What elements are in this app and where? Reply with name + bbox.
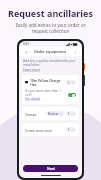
button[interactable]: Clamps [22, 107, 79, 120]
staticText: Medium [48, 112, 59, 116]
staticText: Add any supplies needed with your instal… [23, 59, 78, 67]
staticText: 9:41 [23, 42, 29, 46]
button[interactable]: Quantity stepper [66, 127, 76, 132]
button[interactable]: Quantity stepper [66, 111, 76, 116]
staticText: 1 [68, 128, 70, 132]
button[interactable]: Next [23, 165, 78, 172]
button[interactable]: More options [72, 49, 78, 55]
staticText: 10m Yellow Charge Flex [30, 78, 66, 86]
staticText: Do you need more than 1 unit? [25, 89, 66, 97]
button[interactable]: Medium [46, 111, 64, 116]
staticText: 1 [68, 81, 70, 85]
button[interactable]: 10m Yellow Charge Flex [22, 75, 79, 104]
staticText: Easily add extras to your order or reque… [14, 22, 87, 34]
staticText: Clamps [25, 112, 46, 116]
staticText: Next [47, 166, 55, 171]
button[interactable]: Toggle more than one unit [68, 93, 76, 97]
staticText: Crown reset tools [25, 128, 66, 132]
staticText: 1 [68, 112, 70, 116]
staticText: See details [25, 97, 41, 101]
button[interactable]: Learn more [23, 68, 41, 72]
staticText: Order equipment [34, 49, 67, 54]
button[interactable]: Crown reset tools [22, 123, 79, 136]
staticText: Learn more [23, 68, 41, 72]
staticText: Request ancillaries [0, 7, 101, 19]
button[interactable]: Back [23, 49, 29, 55]
button[interactable]: Quantity stepper [66, 80, 76, 85]
